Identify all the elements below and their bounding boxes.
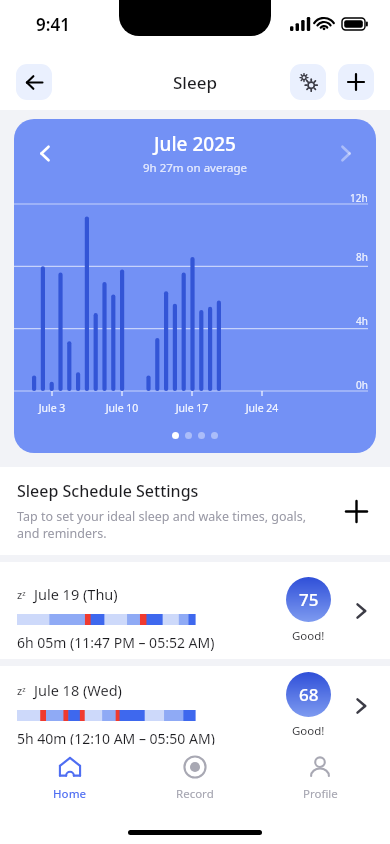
staticText: 75 bbox=[299, 588, 319, 611]
button[interactable]: Next month bbox=[330, 138, 360, 168]
staticText: Home bbox=[53, 786, 87, 802]
staticText: Jule 19 (Thu) bbox=[34, 584, 118, 604]
staticText: Jule 3 bbox=[30, 401, 74, 415]
staticText: Sleep Schedule Settings bbox=[17, 480, 199, 502]
button[interactable]: Add bbox=[338, 64, 374, 100]
staticText: Tap to set your ideal sleep and wake tim… bbox=[17, 508, 328, 542]
staticText: zᶻ bbox=[17, 683, 26, 698]
staticText: Profile bbox=[303, 786, 338, 802]
staticText: 9:41 bbox=[36, 13, 70, 36]
button[interactable]: zᶻ bbox=[0, 666, 390, 745]
staticText: 4h bbox=[356, 314, 368, 328]
staticText: zᶻ bbox=[17, 587, 26, 602]
staticText: Jule 17 bbox=[170, 401, 214, 415]
other: Details bbox=[346, 596, 376, 626]
staticText: Jule 18 (Wed) bbox=[34, 680, 122, 700]
button[interactable]: Profile bbox=[265, 755, 375, 802]
staticText: 68 bbox=[299, 683, 319, 706]
button[interactable]: Add schedule bbox=[336, 491, 376, 531]
staticText: Jule 10 bbox=[100, 401, 144, 415]
staticText: Good! bbox=[292, 628, 325, 644]
staticText: 9h 27m on average bbox=[143, 160, 247, 176]
button[interactable]: Settings bbox=[290, 64, 326, 100]
button[interactable]: Sleep Schedule Settings bbox=[0, 467, 390, 555]
button[interactable]: Previous month bbox=[30, 138, 60, 168]
button[interactable]: Record bbox=[140, 755, 250, 802]
staticText: Sleep bbox=[173, 71, 217, 94]
staticText: 5h 40m (12:10 AM – 05:50 AM) bbox=[17, 729, 215, 745]
other: Details bbox=[346, 691, 376, 721]
button[interactable]: Back bbox=[16, 64, 52, 100]
staticText: Good! bbox=[292, 723, 325, 739]
staticText: 0h bbox=[356, 378, 368, 392]
staticText: Jule 2025 bbox=[154, 131, 236, 157]
staticText: 6h 05m (11:47 PM – 05:52 AM) bbox=[17, 633, 215, 652]
button[interactable]: zᶻ bbox=[0, 562, 390, 659]
button[interactable]: Home bbox=[15, 755, 125, 802]
staticText: Record bbox=[176, 786, 214, 802]
staticText: 8h bbox=[356, 250, 368, 264]
staticText: Jule 24 bbox=[240, 401, 284, 415]
staticText: 12h bbox=[350, 191, 368, 205]
button[interactable]: Previous month bbox=[14, 119, 376, 453]
